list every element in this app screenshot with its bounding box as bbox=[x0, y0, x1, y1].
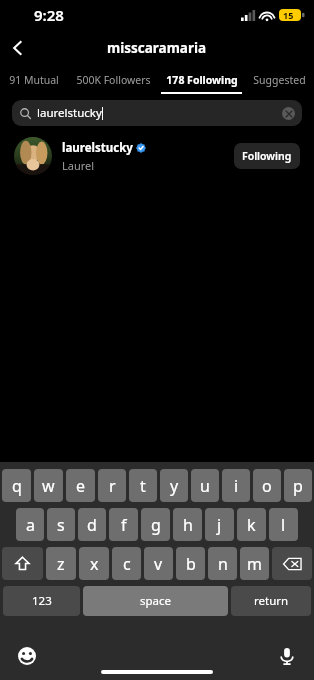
staticText: b bbox=[186, 553, 196, 575]
button[interactable]: Backspace bbox=[272, 547, 312, 580]
button[interactable]: laurelstucky bbox=[0, 132, 314, 180]
button[interactable]: Following bbox=[234, 143, 300, 169]
staticText: 15 bbox=[283, 9, 294, 21]
button[interactable]: Emoji bbox=[16, 645, 38, 667]
staticText: m bbox=[247, 553, 262, 575]
button[interactable]: g bbox=[141, 508, 170, 541]
button[interactable]: v bbox=[144, 547, 173, 580]
staticText: d bbox=[87, 514, 97, 536]
staticText: t bbox=[140, 475, 146, 497]
button[interactable]: 91 Mutual bbox=[0, 66, 68, 94]
button[interactable]: 123 bbox=[3, 586, 80, 616]
staticText: z bbox=[57, 553, 65, 575]
staticText: n bbox=[218, 553, 228, 575]
staticText: l bbox=[281, 514, 286, 536]
button[interactable]: r bbox=[98, 469, 126, 502]
button[interactable]: 178 Following bbox=[158, 66, 245, 94]
button[interactable]: 500K Followers bbox=[68, 66, 158, 94]
button[interactable]: m bbox=[240, 547, 269, 580]
staticText: Laurel bbox=[62, 158, 95, 173]
button[interactable]: Clear bbox=[282, 107, 295, 120]
staticText: i bbox=[234, 475, 239, 497]
button[interactable]: s bbox=[47, 508, 75, 541]
button[interactable]: return bbox=[231, 586, 311, 616]
staticText: space bbox=[140, 593, 172, 609]
staticText: Suggested bbox=[253, 73, 306, 87]
staticText: e bbox=[76, 475, 86, 497]
staticText: u bbox=[200, 475, 210, 497]
staticText: 123 bbox=[32, 593, 52, 609]
staticText: h bbox=[183, 514, 193, 536]
staticText: f bbox=[121, 514, 127, 536]
staticText: 178 Following bbox=[166, 73, 238, 87]
staticText: y bbox=[170, 475, 179, 497]
staticText: 9:28 bbox=[34, 5, 64, 25]
button[interactable]: n bbox=[208, 547, 237, 580]
staticText: Following bbox=[242, 149, 292, 163]
button[interactable]: e bbox=[66, 469, 95, 502]
staticText: x bbox=[90, 553, 99, 575]
button[interactable]: t bbox=[129, 469, 157, 502]
staticText: g bbox=[151, 514, 161, 536]
button[interactable]: k bbox=[237, 508, 266, 541]
button[interactable]: j bbox=[205, 508, 234, 541]
button[interactable]: Back bbox=[0, 30, 36, 66]
staticText: s bbox=[57, 514, 65, 536]
staticText: misscaramaria bbox=[107, 39, 207, 57]
button[interactable]: a bbox=[16, 508, 44, 541]
staticText: r bbox=[109, 475, 116, 497]
button[interactable]: b bbox=[176, 547, 205, 580]
button[interactable]: Shift bbox=[2, 547, 43, 580]
staticText: w bbox=[42, 475, 55, 497]
button[interactable]: d bbox=[78, 508, 106, 541]
button[interactable]: laurelstucky bbox=[12, 100, 302, 126]
button[interactable]: i bbox=[222, 469, 250, 502]
staticText: c bbox=[123, 553, 131, 575]
button[interactable]: p bbox=[284, 469, 312, 502]
button[interactable]: f bbox=[109, 508, 138, 541]
button[interactable]: space bbox=[83, 586, 228, 616]
button[interactable]: l bbox=[269, 508, 298, 541]
staticText: 91 Mutual bbox=[9, 73, 59, 87]
button[interactable]: x bbox=[79, 547, 109, 580]
staticText: q bbox=[12, 475, 22, 497]
staticText: j bbox=[217, 514, 222, 536]
button[interactable]: Dictation bbox=[276, 645, 298, 667]
button[interactable]: y bbox=[160, 469, 188, 502]
button[interactable]: h bbox=[173, 508, 202, 541]
button[interactable]: Suggested bbox=[245, 66, 314, 94]
staticText: laurelstucky bbox=[37, 105, 102, 121]
button[interactable]: c bbox=[112, 547, 141, 580]
button[interactable]: q bbox=[2, 469, 31, 502]
staticText: laurelstucky bbox=[62, 140, 133, 156]
staticText: a bbox=[26, 514, 35, 536]
staticText: 500K Followers bbox=[76, 73, 151, 87]
staticText: return bbox=[254, 593, 289, 609]
button[interactable]: u bbox=[191, 469, 219, 502]
staticText: p bbox=[293, 475, 303, 497]
staticText: k bbox=[247, 514, 256, 536]
button[interactable]: w bbox=[34, 469, 63, 502]
staticText: v bbox=[154, 553, 163, 575]
button[interactable]: z bbox=[46, 547, 76, 580]
button[interactable]: o bbox=[253, 469, 281, 502]
staticText: o bbox=[262, 475, 272, 497]
